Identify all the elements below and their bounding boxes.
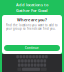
staticText: Where are you? <box>17 17 47 22</box>
staticText: Gather For Good <box>16 8 48 13</box>
staticText: Continue <box>25 46 39 50</box>
staticText: Find the locations you want to add to yo… <box>6 23 58 31</box>
staticText: Add locations to <box>16 2 48 7</box>
button[interactable]: Continue <box>4 45 60 51</box>
